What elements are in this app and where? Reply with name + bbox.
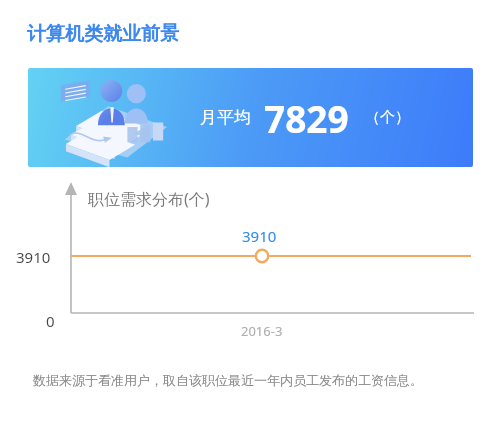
staticText: 0 bbox=[46, 311, 55, 331]
staticText: 2016-3 bbox=[241, 322, 283, 340]
staticText: 职位需求分布(个) bbox=[88, 188, 210, 210]
staticText: 月平均 bbox=[200, 107, 251, 128]
staticText: 数据来源于看准用户，取自该职位最近一年内员工发布的工资信息。 bbox=[33, 372, 423, 388]
button[interactable]: 月平均 7829 个 bbox=[28, 68, 473, 167]
staticText: 7829 bbox=[264, 93, 349, 143]
staticText: 计算机类就业前景 bbox=[27, 22, 179, 46]
staticText: 3910 bbox=[242, 226, 277, 246]
staticText: 3910 bbox=[16, 247, 51, 267]
staticText: （个） bbox=[365, 108, 410, 127]
